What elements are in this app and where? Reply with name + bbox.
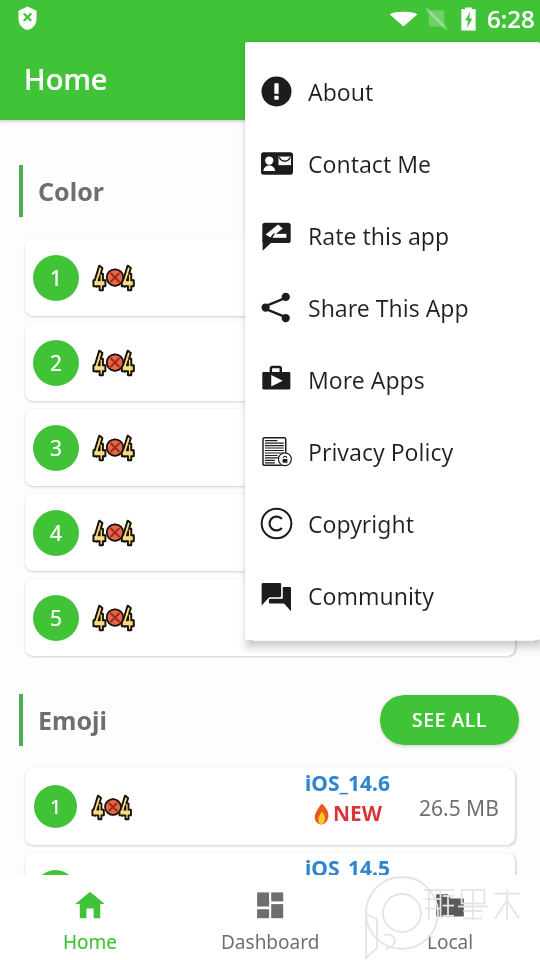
- staticText: NEW: [333, 884, 383, 913]
- staticText: Home: [24, 59, 108, 98]
- staticText: Share This App: [308, 292, 469, 323]
- button[interactable]: Privacy Policy: [245, 415, 540, 487]
- staticText: Privacy Policy: [308, 436, 454, 467]
- staticText: Contact Me: [308, 148, 432, 179]
- staticText: Rate this app: [308, 220, 450, 251]
- button[interactable]: 1: [25, 768, 515, 845]
- button[interactable]: Home: [0, 875, 180, 960]
- other: No signal: [426, 8, 447, 30]
- button[interactable]: 3: [25, 409, 515, 486]
- button[interactable]: Contact Me: [245, 127, 540, 199]
- staticText: iOS_14.6: [305, 769, 391, 798]
- other: Battery charging: [460, 7, 477, 31]
- button[interactable]: About: [245, 55, 540, 127]
- staticText: Community: [308, 580, 434, 611]
- staticText: 6:28: [487, 2, 535, 35]
- staticText: 25.9 MB: [419, 879, 499, 908]
- staticText: Home: [63, 929, 118, 955]
- staticText: SEE ALL: [412, 707, 487, 733]
- staticText: More Apps: [308, 364, 425, 395]
- button[interactable]: 1: [25, 853, 515, 930]
- button[interactable]: SEE ALL: [380, 695, 519, 745]
- staticText: 2: [50, 349, 63, 378]
- staticText: Emoji: [38, 703, 107, 737]
- button[interactable]: 5: [25, 579, 515, 656]
- button[interactable]: Copyright: [245, 487, 540, 559]
- staticText: Dashboard: [221, 929, 320, 955]
- staticText: 3: [50, 434, 63, 463]
- staticText: iOS_14.5: [305, 854, 391, 883]
- button[interactable]: 1: [25, 239, 515, 316]
- staticText: Copyright: [308, 508, 414, 539]
- button[interactable]: Rate this app: [245, 199, 540, 271]
- button[interactable]: More Apps: [245, 343, 540, 415]
- button[interactable]: Share This App: [245, 271, 540, 343]
- staticText: 4: [50, 519, 63, 548]
- staticText: Local: [427, 929, 474, 955]
- staticText: About: [308, 76, 374, 107]
- button[interactable]: Dashboard: [180, 875, 360, 960]
- other: Wifi: [389, 8, 418, 29]
- staticText: NEW: [333, 799, 383, 828]
- staticText: 1: [50, 793, 62, 820]
- other: Security: [17, 6, 38, 30]
- staticText: Color: [38, 174, 104, 208]
- button[interactable]: 4: [25, 494, 515, 571]
- button[interactable]: 2: [25, 324, 515, 401]
- staticText: 1: [50, 264, 63, 293]
- button[interactable]: Community: [245, 559, 540, 631]
- button[interactable]: Local: [360, 875, 540, 960]
- staticText: 5: [50, 604, 63, 633]
- staticText: 26.5 MB: [419, 794, 499, 823]
